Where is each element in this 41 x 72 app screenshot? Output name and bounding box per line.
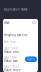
staticText: Application Name [4,8,28,11]
staticText: Open [27,57,35,61]
button[interactable]: Open [25,56,37,62]
staticText: Value one [4,50,19,54]
staticText: Sub line [4,40,16,44]
staticText: Label three [4,65,20,68]
staticText: Label one [4,47,18,50]
staticText: Heading text line [4,33,28,37]
staticText: Value three [4,68,21,72]
staticText: Back [4,21,9,24]
staticText: Label two [4,56,17,59]
staticText: Value two [4,59,18,63]
staticText: Edit [32,21,37,24]
